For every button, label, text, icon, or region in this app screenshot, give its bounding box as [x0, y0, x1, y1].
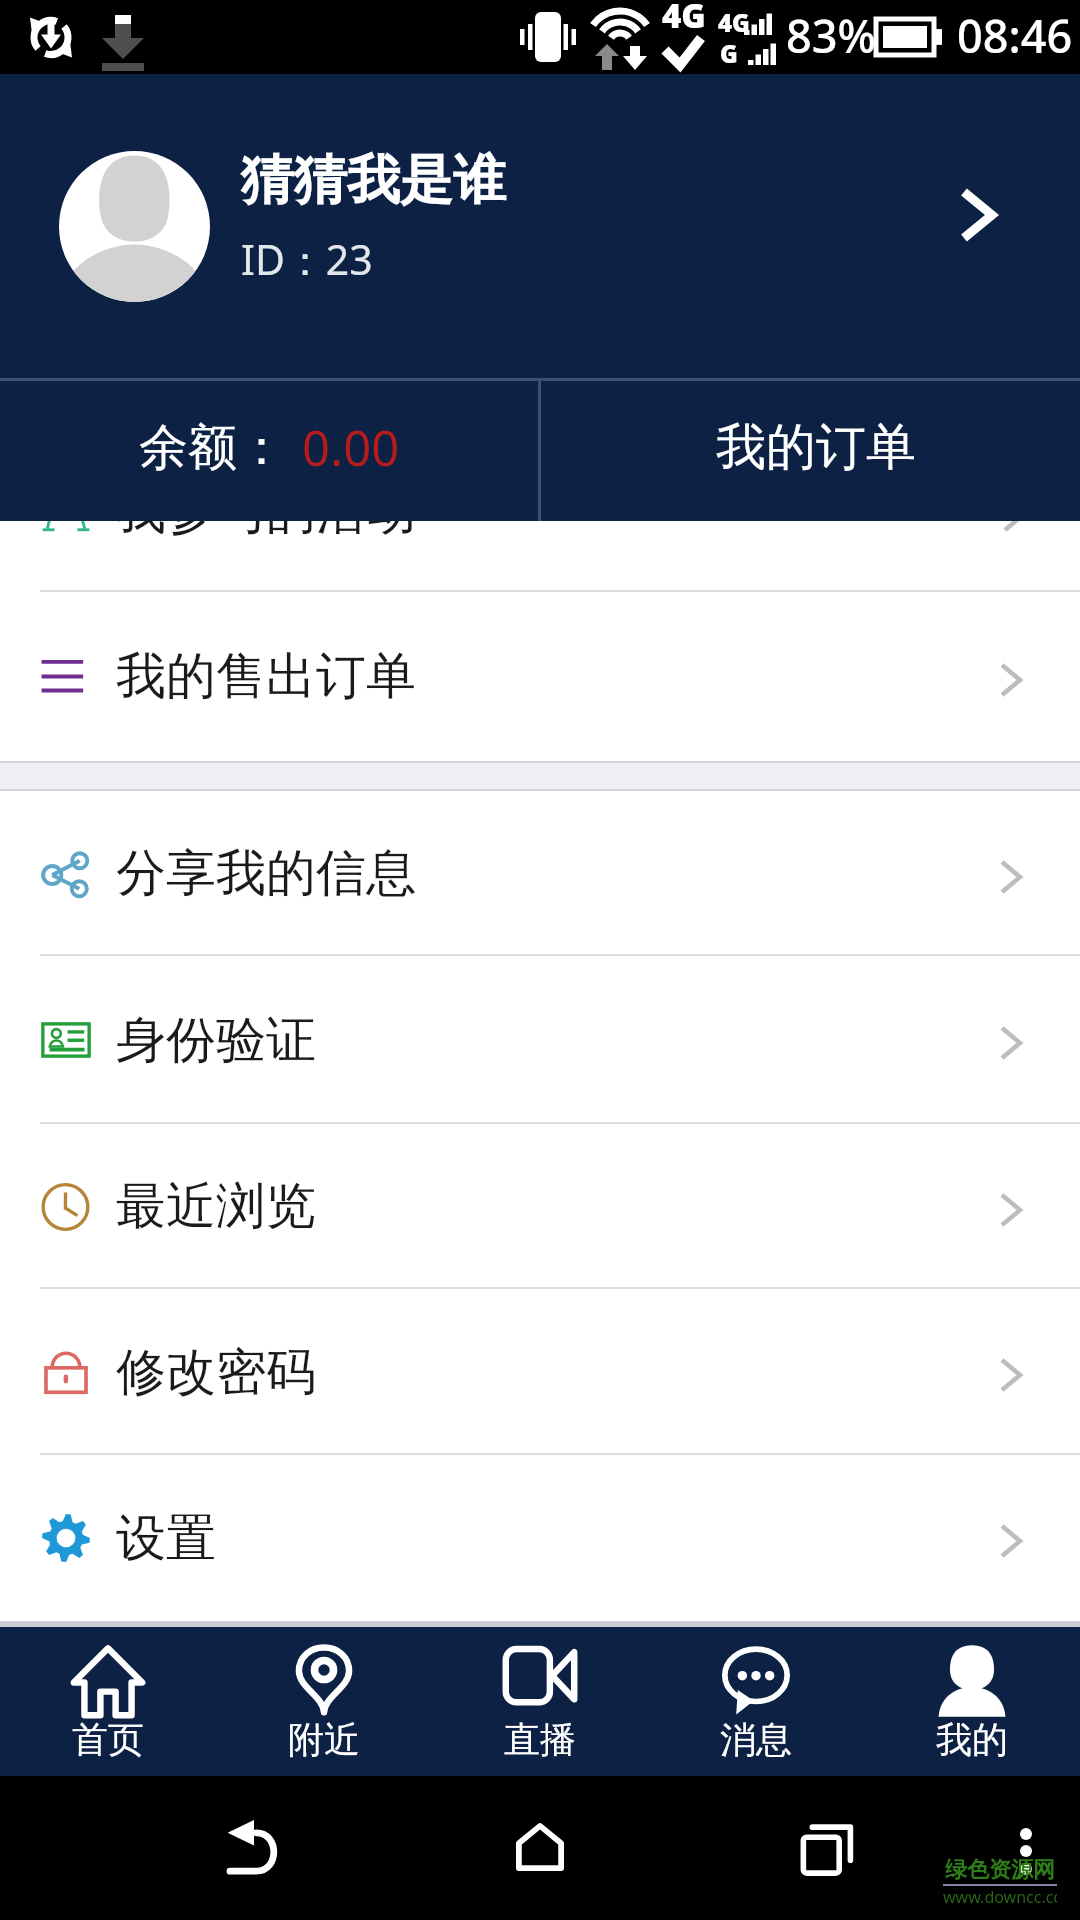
button[interactable]: 附近	[216, 1627, 432, 1776]
staticText: 绿色资源网	[945, 1856, 1055, 1884]
button[interactable]: 猜猜我是谁	[0, 74, 1080, 378]
staticText: 我的	[936, 1717, 1008, 1762]
staticText: 0.00	[302, 414, 400, 481]
button[interactable]: Home	[516, 1823, 564, 1871]
staticText: 余额：	[139, 417, 286, 479]
staticText: 4G	[718, 6, 750, 39]
button[interactable]: 直播	[432, 1627, 648, 1776]
button[interactable]: 我参与的活动	[0, 521, 1080, 592]
staticText: 08:46	[957, 5, 1073, 66]
staticText: 最近浏览	[116, 1175, 316, 1238]
staticText: 83%	[786, 5, 876, 66]
staticText: ID：23	[241, 231, 373, 287]
button[interactable]: 身份验证	[0, 956, 1080, 1124]
staticText: 我的订单	[716, 416, 916, 479]
button[interactable]: 我的售出订单	[0, 592, 1080, 761]
staticText: 消息	[720, 1717, 792, 1762]
button[interactable]: 修改密码	[0, 1289, 1080, 1455]
staticText: 我参与的活动	[116, 521, 416, 543]
staticText: 直播	[504, 1717, 576, 1762]
button[interactable]: 分享我的信息	[0, 791, 1080, 956]
button[interactable]: Recent apps	[800, 1821, 856, 1877]
button[interactable]: Back	[214, 1812, 294, 1892]
button[interactable]: 首页	[0, 1627, 216, 1776]
staticText: 猜猜我是谁	[241, 147, 506, 214]
staticText: 首页	[72, 1717, 144, 1762]
button[interactable]: 我的订单	[541, 378, 1080, 521]
staticText: 修改密码	[116, 1341, 316, 1404]
staticText: www.downcc.com	[943, 1886, 1057, 1908]
staticText: 身份验证	[116, 1009, 316, 1072]
staticText: G	[720, 37, 738, 70]
staticText: 设置	[116, 1507, 216, 1570]
button[interactable]: 我的	[864, 1627, 1080, 1776]
button[interactable]: 消息	[648, 1627, 864, 1776]
button[interactable]: 最近浏览	[0, 1124, 1080, 1289]
staticText: 分享我的信息	[116, 842, 416, 905]
button[interactable]: 设置	[0, 1455, 1080, 1621]
staticText: 我的售出订单	[116, 645, 416, 708]
button[interactable]: 余额：	[0, 378, 538, 521]
button[interactable]: More options	[1010, 1821, 1042, 1869]
staticText: 4G	[662, 0, 706, 38]
staticText: 附近	[288, 1717, 360, 1762]
